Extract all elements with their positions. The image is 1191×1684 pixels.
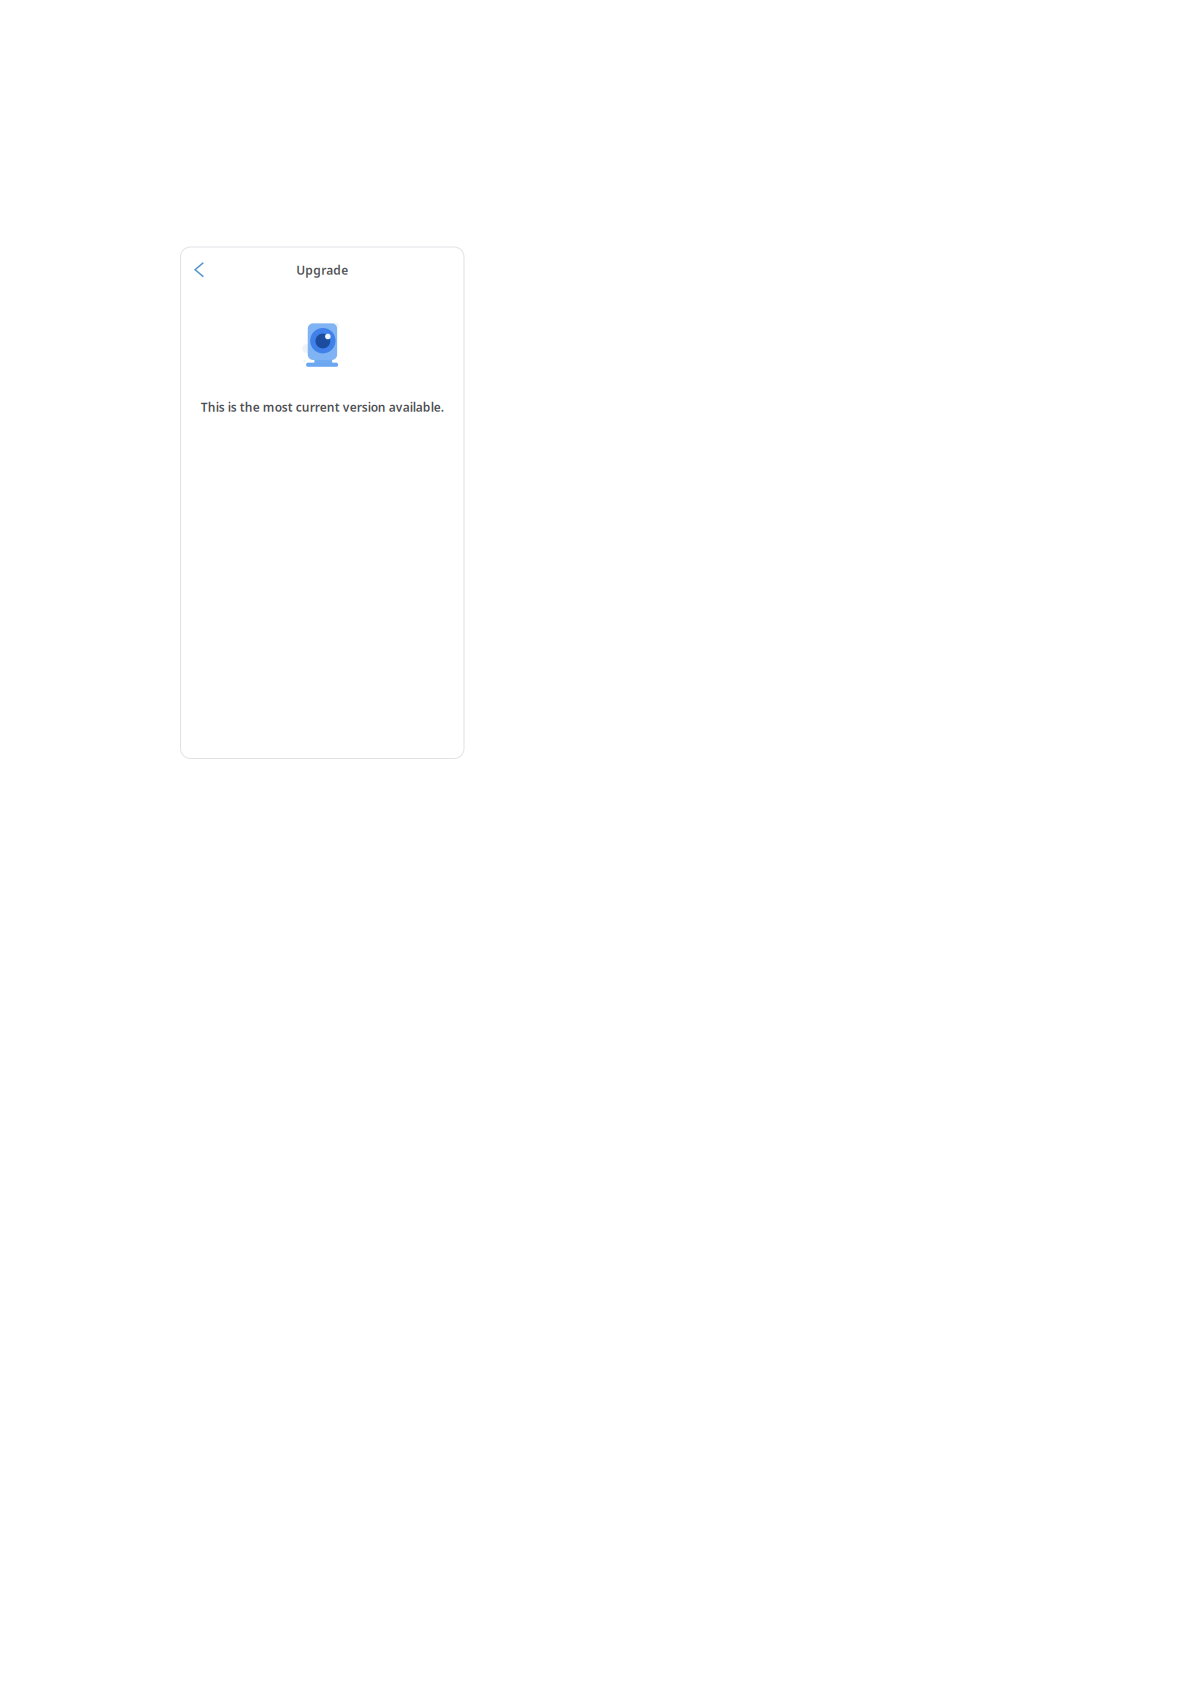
staticText: Upgrade — [296, 262, 348, 278]
button[interactable]: Back — [186, 256, 212, 284]
staticText: This is the most current version availab… — [201, 399, 444, 415]
